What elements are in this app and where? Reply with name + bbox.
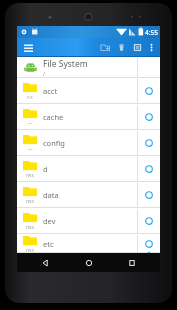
staticText: dev — [43, 216, 137, 226]
staticText: r-x — [27, 94, 33, 100]
button[interactable]: Recents — [117, 253, 147, 272]
staticText: File System — [43, 58, 88, 70]
staticText: acct — [43, 86, 137, 96]
staticText: — — [28, 120, 33, 126]
button[interactable]: — — [17, 130, 160, 156]
button[interactable]: rwx — [17, 234, 160, 253]
button[interactable]: Select etc — [138, 234, 160, 253]
staticText: d — [43, 164, 137, 174]
staticText: rwx — [26, 172, 34, 178]
button[interactable]: — — [17, 104, 160, 130]
button[interactable]: Select all — [129, 39, 145, 55]
button[interactable]: Delete — [113, 39, 129, 55]
button[interactable]: rwx — [17, 208, 160, 234]
button[interactable]: r-x — [17, 78, 160, 104]
staticText: rwx — [26, 198, 34, 204]
staticText: — — [28, 146, 33, 152]
staticText: rwx — [26, 224, 34, 230]
button[interactable]: New folder — [97, 39, 113, 55]
button[interactable]: Select data — [138, 182, 160, 208]
button[interactable]: Home — [74, 253, 104, 272]
button[interactable]: Open navigation drawer — [22, 41, 35, 54]
staticText: / — [43, 70, 46, 77]
button[interactable]: Select dev — [138, 208, 160, 234]
staticText: rwx — [26, 247, 34, 253]
button[interactable]: Select config — [138, 130, 160, 156]
staticText: config — [43, 138, 137, 148]
button[interactable]: File System — [17, 57, 160, 78]
button[interactable]: Select d — [138, 156, 160, 182]
button[interactable]: rwx — [17, 156, 160, 182]
staticText: data — [43, 190, 137, 200]
button[interactable]: rwx — [17, 182, 160, 208]
button[interactable]: Select acct — [138, 78, 160, 104]
staticText: etc — [43, 239, 137, 249]
button[interactable]: Select cache — [138, 104, 160, 130]
button[interactable]: More options — [145, 41, 158, 54]
button[interactable]: Back — [30, 253, 60, 272]
staticText: 4:55 — [145, 28, 158, 37]
staticText: cache — [43, 112, 137, 122]
